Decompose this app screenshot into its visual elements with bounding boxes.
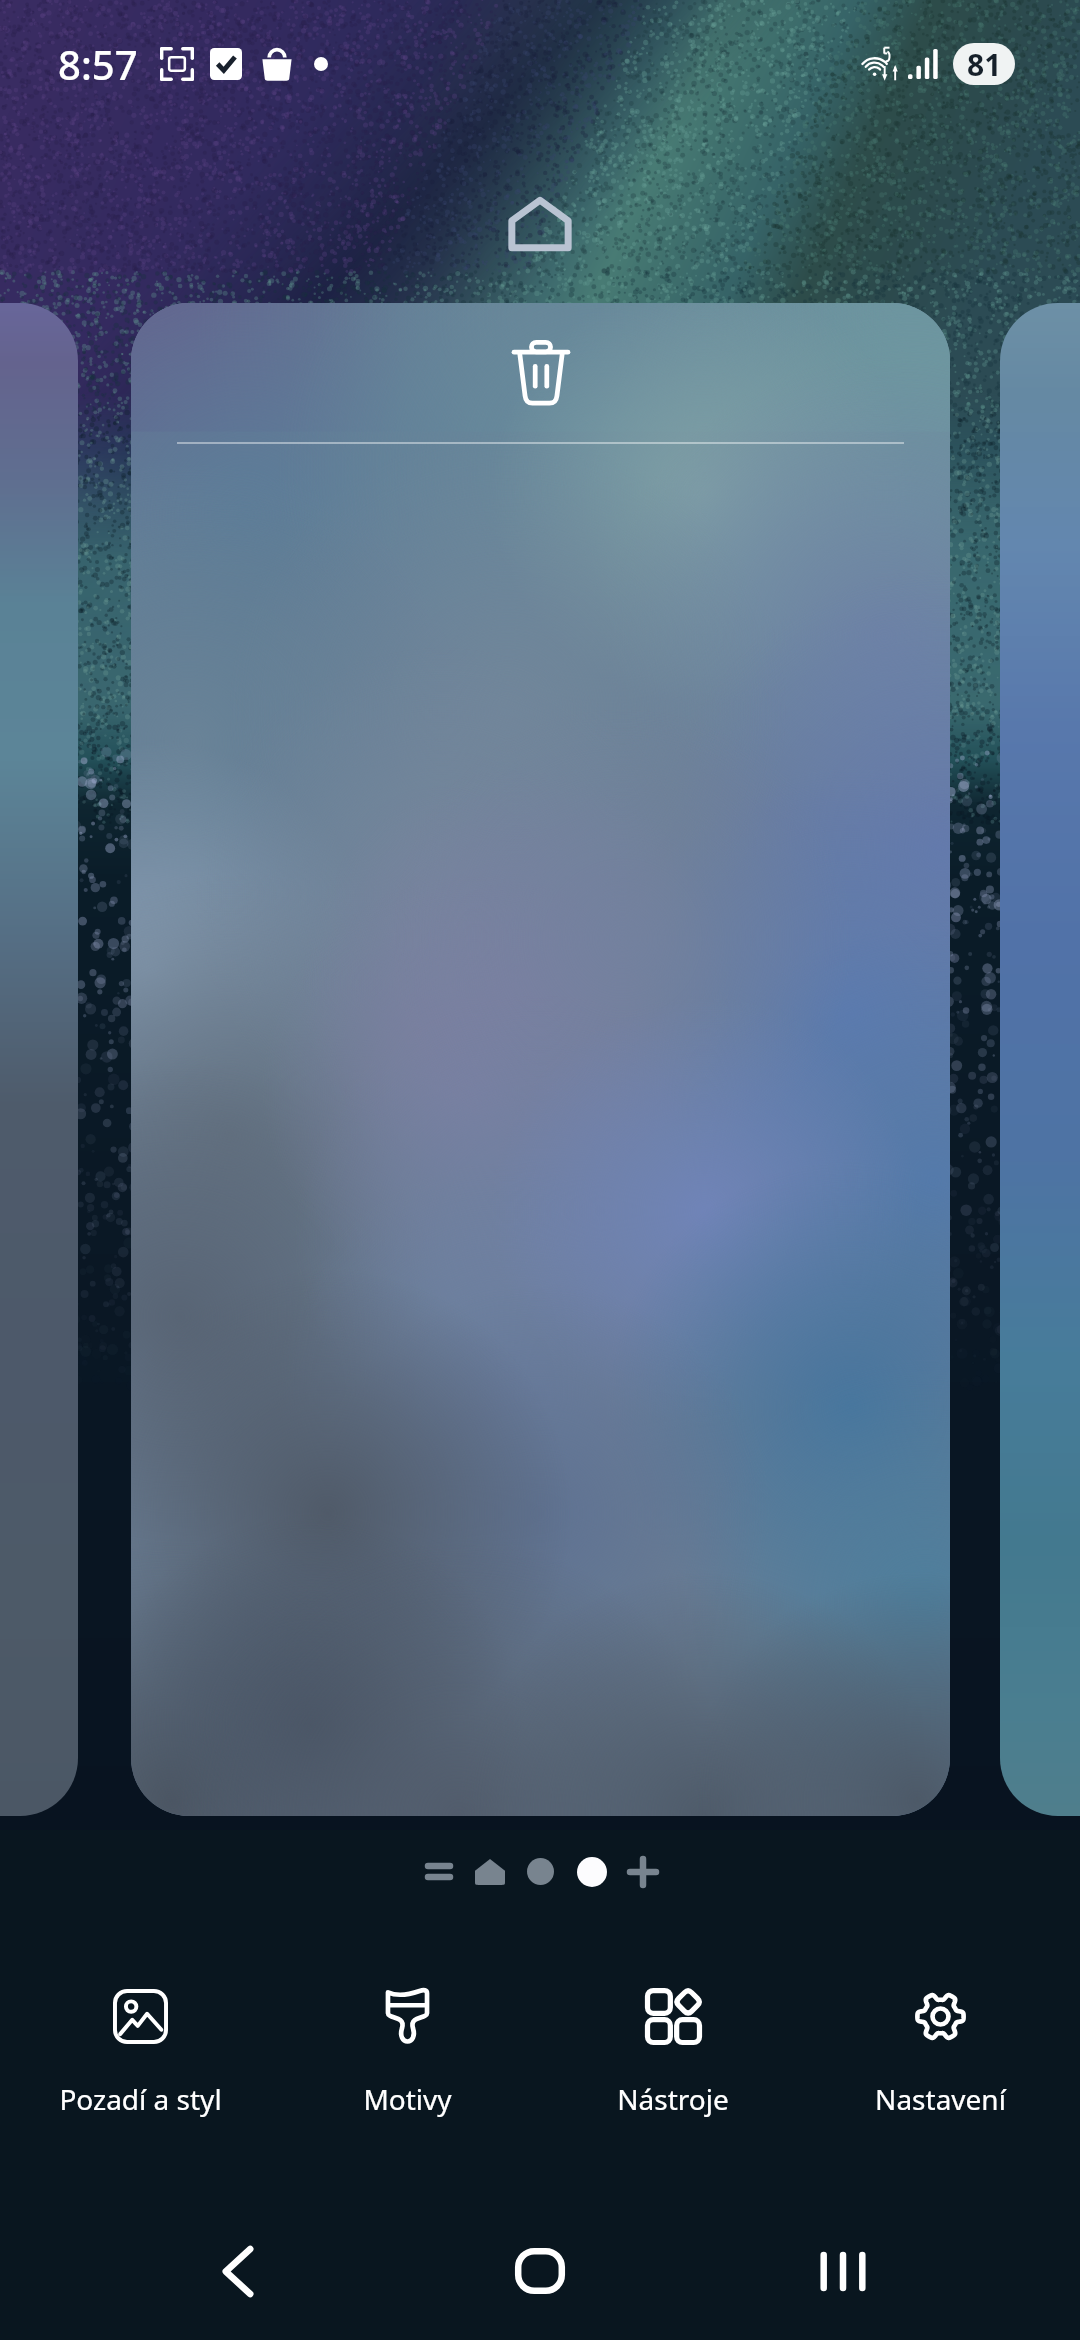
staticText: Nastavení	[875, 2080, 1006, 2118]
button[interactable]: Home	[475, 2206, 605, 2336]
button[interactable]: Recent apps	[778, 2206, 908, 2336]
button[interactable]	[0, 303, 78, 1816]
button[interactable]: Home page	[464, 1846, 515, 1897]
staticText: Motivy	[363, 2080, 452, 2118]
button[interactable]: Back	[173, 2206, 303, 2336]
staticText: 81	[967, 44, 1002, 85]
button[interactable]: Add page	[617, 1846, 668, 1897]
button[interactable]: Pozadí a styl	[14, 1989, 266, 2118]
button[interactable]: App list page	[413, 1846, 464, 1897]
button[interactable]: Page 3, current	[566, 1846, 617, 1897]
button[interactable]: Remove page	[495, 327, 587, 419]
staticText: Pozadí a styl	[59, 2080, 222, 2118]
button[interactable]: Nastavení	[814, 1989, 1066, 2118]
staticText: 8:57	[58, 37, 138, 91]
button[interactable]: Nástroje	[547, 1989, 799, 2118]
button[interactable]: Home screen	[492, 176, 588, 272]
button[interactable]: Page 2	[515, 1846, 566, 1897]
button[interactable]: Remove page	[131, 303, 950, 1816]
staticText: Nástroje	[617, 2080, 729, 2118]
button[interactable]: Motivy	[281, 1989, 533, 2118]
button[interactable]	[1000, 303, 1080, 1816]
